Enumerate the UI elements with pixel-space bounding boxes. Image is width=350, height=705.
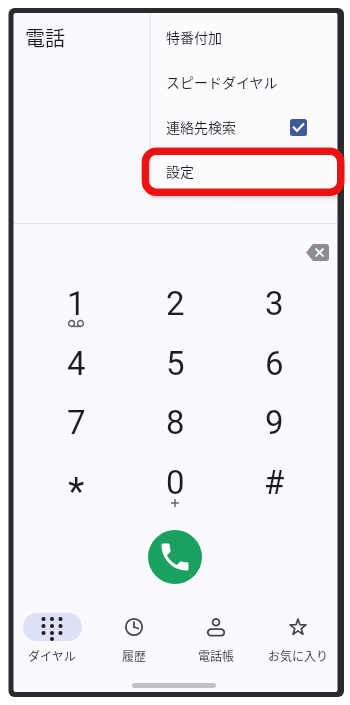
staticText: 8 xyxy=(166,403,185,442)
button[interactable]: スピードダイヤル xyxy=(151,59,337,105)
staticText: 設定 xyxy=(166,161,194,181)
button[interactable] xyxy=(11,602,93,668)
button[interactable]: * xyxy=(31,453,121,511)
staticText: 6 xyxy=(265,344,284,383)
button[interactable] xyxy=(175,602,257,668)
staticText: 2 xyxy=(166,284,185,323)
staticText: 0 xyxy=(166,463,185,502)
staticText: ダイヤル xyxy=(28,647,76,664)
staticText: 7 xyxy=(67,403,86,442)
staticText: 5 xyxy=(166,344,185,383)
staticText: 9 xyxy=(265,403,284,442)
button[interactable]: # xyxy=(229,453,319,511)
button[interactable]: 9 xyxy=(229,393,319,451)
staticText: 履歴 xyxy=(122,647,147,664)
staticText: 特番付加 xyxy=(166,27,222,47)
button[interactable]: 特番付加 xyxy=(151,14,337,60)
staticText: 3 xyxy=(265,284,284,323)
staticText: 1 xyxy=(67,284,86,323)
staticText: # xyxy=(264,463,285,502)
button[interactable] xyxy=(306,244,329,261)
button[interactable] xyxy=(93,602,175,668)
button[interactable]: 1 xyxy=(31,274,121,332)
staticText: 電話帳 xyxy=(198,647,235,664)
button[interactable]: 6 xyxy=(229,334,319,392)
button[interactable]: 2 xyxy=(130,274,220,332)
staticText: 連絡先検索 xyxy=(166,117,236,137)
button[interactable]: 4 xyxy=(31,334,121,392)
button[interactable]: 設定 xyxy=(151,148,337,194)
button[interactable]: 3 xyxy=(229,274,319,332)
button[interactable]: 8 xyxy=(130,393,220,451)
staticText: * xyxy=(68,470,85,515)
staticText: お気に入り xyxy=(268,647,329,664)
button[interactable] xyxy=(148,530,202,584)
button[interactable]: 7 xyxy=(31,393,121,451)
button[interactable] xyxy=(257,602,339,668)
button[interactable]: 0 xyxy=(130,453,220,511)
staticText: 4 xyxy=(67,344,86,383)
staticText: スピードダイヤル xyxy=(166,72,278,92)
staticText: 電話 xyxy=(25,23,65,52)
button[interactable]: 連絡先検索 xyxy=(151,104,337,150)
button[interactable]: 5 xyxy=(130,334,220,392)
